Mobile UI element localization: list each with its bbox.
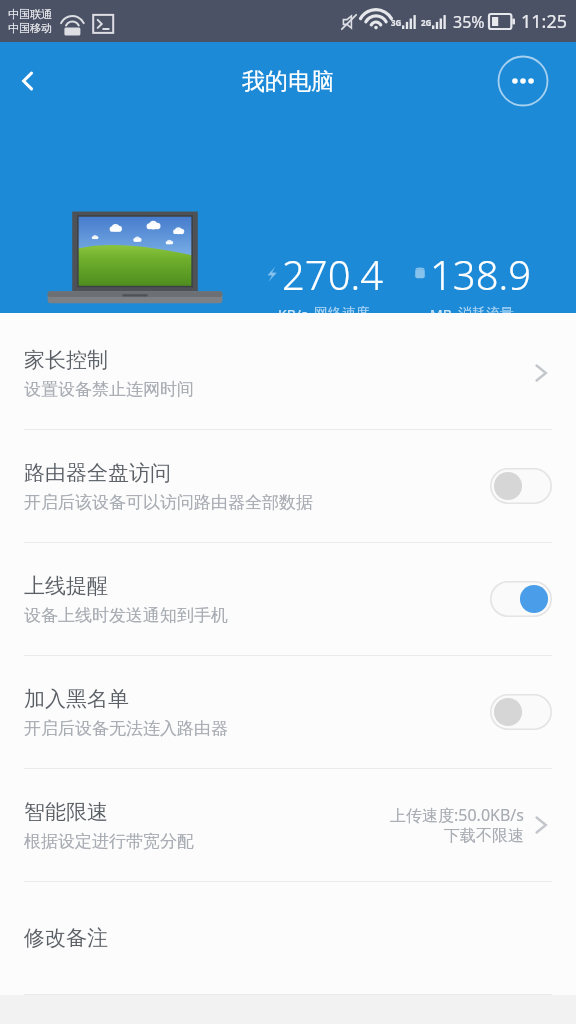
staticText: 设置设备禁止连网时间 <box>24 379 194 400</box>
staticText: 上线提醒 <box>24 573 108 599</box>
staticText: MB <box>430 305 452 313</box>
staticText: KB/s <box>278 305 308 313</box>
staticText: 35% <box>453 11 485 33</box>
button[interactable]: 加入黑名单 <box>0 656 576 768</box>
staticText: 加入黑名单 <box>24 686 129 712</box>
button[interactable]: Off <box>490 694 552 730</box>
staticText: 开启后该设备可以访问路由器全部数据 <box>24 492 313 513</box>
button[interactable]: 家长控制 <box>0 317 576 429</box>
button[interactable]: 上线提醒 <box>0 543 576 655</box>
staticText: 中国联通 <box>8 7 52 21</box>
staticText: 我的电脑 <box>242 67 334 96</box>
button[interactable]: Back <box>0 53 56 109</box>
staticText: 消耗流量 <box>458 305 514 313</box>
button[interactable]: On <box>490 581 552 617</box>
staticText: 中国移动 <box>8 21 52 35</box>
staticText: 3G <box>391 17 402 28</box>
staticText: 网络速度 <box>314 305 370 313</box>
staticText: 设备上线时发送通知到手机 <box>24 605 228 626</box>
button[interactable]: 智能限速 <box>0 769 576 881</box>
staticText: 开启后设备无法连入路由器 <box>24 718 228 739</box>
button[interactable]: 路由器全盘访问 <box>0 430 576 542</box>
button[interactable]: 修改备注 <box>0 882 576 994</box>
button[interactable]: Off <box>490 468 552 504</box>
staticText: 11:25 <box>521 9 568 34</box>
staticText: 270.4 <box>282 247 384 301</box>
staticText: 路由器全盘访问 <box>24 460 171 486</box>
staticText: 138.9 <box>430 247 532 301</box>
button[interactable]: More options <box>497 55 549 107</box>
staticText: 上传速度:50.0KB/s <box>390 804 524 826</box>
staticText: 2G <box>421 17 432 28</box>
staticText: 下载不限速 <box>444 826 524 846</box>
staticText: 家长控制 <box>24 347 108 373</box>
staticText: 修改备注 <box>24 925 108 951</box>
staticText: 智能限速 <box>24 799 108 825</box>
staticText: 根据设定进行带宽分配 <box>24 831 194 852</box>
